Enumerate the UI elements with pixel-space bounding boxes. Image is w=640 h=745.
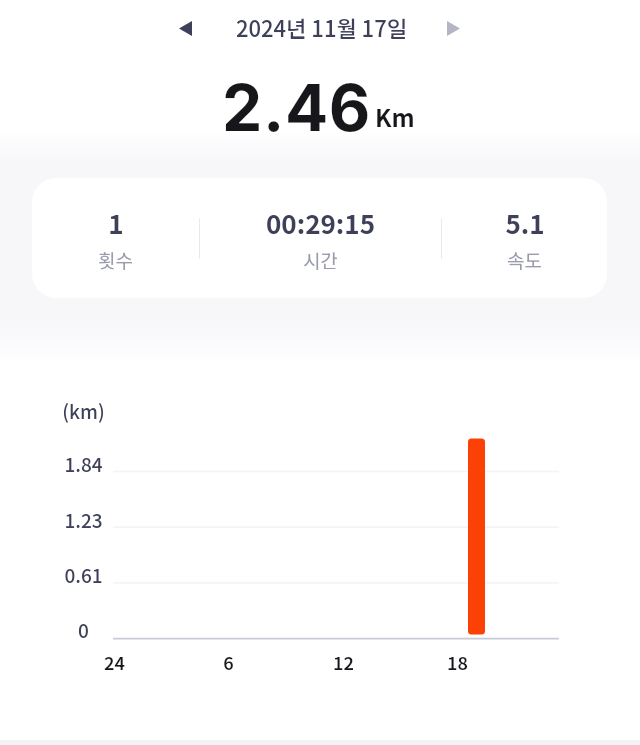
staticText: 6 [223,649,234,675]
staticText: 00:29:15 [266,204,375,242]
button[interactable]: 00:29:15 [200,178,441,298]
staticText: 2024년 11월 17일 [236,11,407,43]
staticText: 18 [447,649,468,675]
button[interactable]: Previous day [163,6,207,50]
button[interactable]: Next day [431,6,475,50]
staticText: 시간 [303,246,338,274]
staticText: 12 [333,649,354,675]
staticText: 속도 [507,246,542,274]
staticText: 횟수 [98,246,133,274]
staticText: 24 [104,649,125,675]
staticText: 1 [108,204,124,242]
staticText: Km [375,99,415,134]
staticText: 5.1 [505,204,545,242]
button[interactable]: 1 [32,178,199,298]
staticText: 0.61 [64,561,103,589]
staticText: 1.23 [64,506,103,534]
button[interactable]: 5.1 [442,178,607,298]
staticText: 0 [78,616,89,644]
staticText: 2.46 [222,69,371,146]
staticText: (km) [62,397,105,425]
staticText: 1.84 [64,450,103,478]
